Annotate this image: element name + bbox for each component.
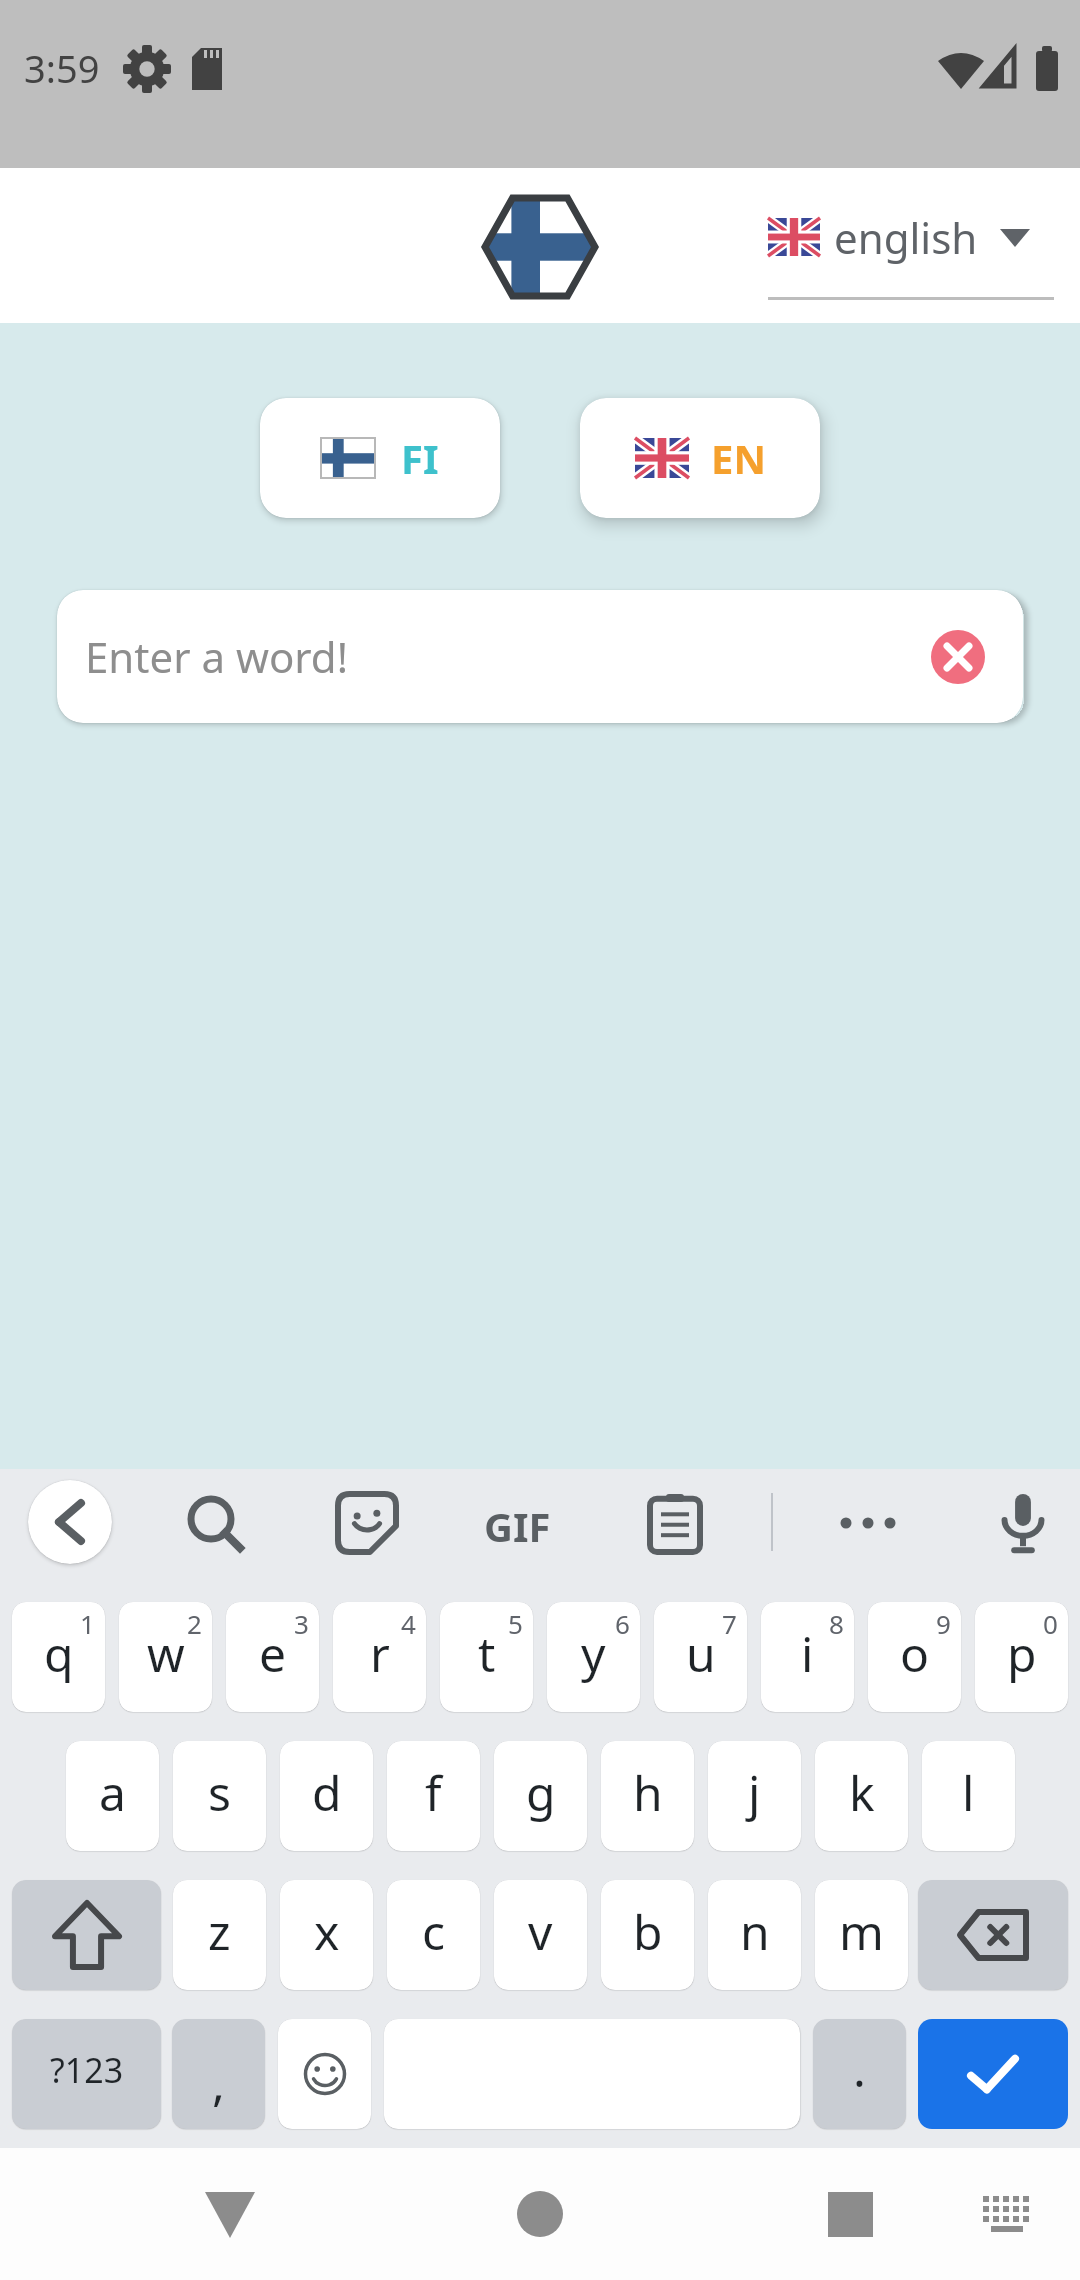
button[interactable]: k: [815, 1741, 908, 1851]
staticText: ?123: [50, 2047, 124, 2093]
button[interactable]: [180, 2168, 280, 2260]
staticText: o: [900, 1621, 930, 1686]
button[interactable]: b: [601, 1880, 694, 1990]
button[interactable]: e: [226, 1602, 319, 1712]
staticText: 9: [936, 1606, 951, 1641]
staticText: i: [801, 1621, 814, 1686]
button[interactable]: [931, 630, 985, 684]
staticText: 3:59: [24, 42, 100, 94]
button[interactable]: [973, 1473, 1073, 1573]
button[interactable]: y: [547, 1602, 640, 1712]
button[interactable]: o: [868, 1602, 961, 1712]
button[interactable]: d: [280, 1741, 373, 1851]
button[interactable]: p: [975, 1602, 1068, 1712]
staticText: Enter a word!: [85, 628, 348, 685]
staticText: d: [312, 1760, 342, 1825]
button[interactable]: z: [173, 1880, 266, 1990]
staticText: 5: [508, 1606, 523, 1641]
button[interactable]: q: [12, 1602, 105, 1712]
staticText: y: [581, 1621, 606, 1686]
staticText: c: [422, 1899, 446, 1964]
staticText: EN: [711, 431, 766, 485]
button[interactable]: [278, 2019, 371, 2129]
button[interactable]: h: [601, 1741, 694, 1851]
staticText: g: [526, 1760, 556, 1825]
button[interactable]: [800, 2168, 900, 2260]
staticText: v: [528, 1899, 553, 1964]
staticText: ,: [212, 2050, 225, 2115]
button[interactable]: x: [280, 1880, 373, 1990]
staticText: j: [748, 1760, 761, 1825]
staticText: .: [853, 2036, 866, 2101]
button[interactable]: [28, 1480, 112, 1564]
staticText: 1: [80, 1606, 95, 1641]
button[interactable]: english: [768, 202, 1058, 272]
button[interactable]: FI: [260, 398, 500, 518]
staticText: z: [208, 1899, 231, 1964]
button[interactable]: m: [815, 1880, 908, 1990]
button[interactable]: l: [922, 1741, 1015, 1851]
button[interactable]: n: [708, 1880, 801, 1990]
button[interactable]: i: [761, 1602, 854, 1712]
staticText: x: [314, 1899, 340, 1964]
staticText: l: [962, 1760, 975, 1825]
staticText: q: [44, 1621, 74, 1686]
staticText: p: [1007, 1621, 1037, 1686]
button[interactable]: s: [173, 1741, 266, 1851]
staticText: m: [839, 1899, 884, 1964]
staticText: k: [849, 1760, 875, 1825]
button[interactable]: ,: [172, 2019, 265, 2129]
staticText: 2: [187, 1606, 202, 1641]
staticText: s: [208, 1760, 231, 1825]
button[interactable]: w: [119, 1602, 212, 1712]
button[interactable]: [165, 1473, 265, 1573]
staticText: 6: [615, 1606, 630, 1641]
button[interactable]: EN: [580, 398, 820, 518]
button[interactable]: [490, 2168, 590, 2260]
button[interactable]: .: [813, 2019, 906, 2129]
staticText: t: [478, 1621, 496, 1686]
button[interactable]: g: [494, 1741, 587, 1851]
staticText: u: [686, 1621, 716, 1686]
button[interactable]: t: [440, 1602, 533, 1712]
staticText: b: [633, 1899, 663, 1964]
staticText: n: [740, 1899, 770, 1964]
button[interactable]: [918, 1880, 1068, 1990]
button[interactable]: u: [654, 1602, 747, 1712]
staticText: 8: [829, 1606, 844, 1641]
button[interactable]: GIF: [484, 1499, 551, 1553]
button[interactable]: Enter a word!: [57, 590, 1023, 723]
button[interactable]: c: [387, 1880, 480, 1990]
staticText: 0: [1043, 1606, 1058, 1641]
staticText: 3: [294, 1606, 309, 1641]
button[interactable]: j: [708, 1741, 801, 1851]
button[interactable]: [818, 1473, 918, 1573]
staticText: a: [99, 1760, 126, 1825]
button[interactable]: [12, 1880, 161, 1990]
button[interactable]: [918, 2019, 1068, 2129]
button[interactable]: v: [494, 1880, 587, 1990]
staticText: h: [633, 1760, 663, 1825]
staticText: w: [147, 1621, 185, 1686]
button[interactable]: [317, 1473, 417, 1573]
staticText: r: [370, 1621, 390, 1686]
staticText: 7: [722, 1606, 737, 1641]
staticText: english: [834, 209, 978, 266]
button[interactable]: [625, 1473, 725, 1573]
button[interactable]: r: [333, 1602, 426, 1712]
staticText: e: [259, 1621, 287, 1686]
button[interactable]: ?123: [12, 2019, 161, 2129]
button[interactable]: f: [387, 1741, 480, 1851]
button[interactable]: a: [66, 1741, 159, 1851]
staticText: f: [425, 1760, 442, 1825]
staticText: FI: [401, 431, 439, 485]
staticText: 4: [401, 1606, 416, 1641]
